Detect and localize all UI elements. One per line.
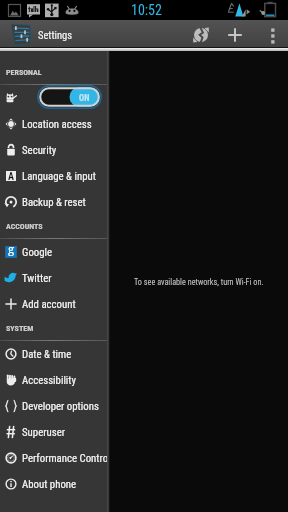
- staticText: Twitter: [22, 272, 52, 285]
- button[interactable]: More options: [259, 21, 287, 49]
- button[interactable]: Date & time: [0, 341, 107, 367]
- button[interactable]: Add: [221, 21, 249, 49]
- staticText: Date & time: [22, 348, 72, 361]
- button[interactable]: Developer options: [0, 393, 107, 419]
- staticText: Language & input: [22, 170, 96, 183]
- staticText: ACCOUNTS: [6, 222, 43, 231]
- button[interactable]: Performance Control: [0, 445, 107, 471]
- button[interactable]: Twitter: [0, 265, 107, 291]
- staticText: Accessibility: [22, 374, 77, 387]
- button[interactable]: Location access: [0, 111, 107, 137]
- button[interactable]: Settings: [0, 21, 73, 49]
- button[interactable]: Backup & reset: [0, 189, 107, 215]
- staticText: 10:52: [131, 2, 162, 18]
- staticText: Google: [22, 246, 53, 259]
- staticText: SYSTEM: [6, 324, 34, 333]
- staticText: Location access: [22, 118, 92, 131]
- button[interactable]: Security: [0, 137, 107, 163]
- staticText: About phone: [22, 478, 77, 491]
- button[interactable]: A: [0, 163, 107, 189]
- button[interactable]: Accessibility: [0, 367, 107, 393]
- staticText: Performance Control: [22, 452, 107, 465]
- button[interactable]: ON: [0, 85, 107, 111]
- staticText: g: [8, 241, 15, 257]
- staticText: PERSONAL: [6, 68, 42, 77]
- staticText: Backup & reset: [22, 196, 86, 209]
- staticText: Superuser: [22, 426, 65, 439]
- button[interactable]: Refresh: [187, 21, 215, 49]
- button[interactable]: g: [0, 239, 107, 265]
- button[interactable]: Add account: [0, 291, 107, 317]
- staticText: Developer options: [22, 400, 99, 413]
- staticText: ON: [79, 93, 90, 103]
- staticText: A: [8, 171, 14, 181]
- staticText: Security: [22, 144, 57, 157]
- button[interactable]: About phone: [0, 471, 107, 497]
- staticText: Settings: [38, 29, 73, 41]
- staticText: To see available networks, turn Wi-Fi on…: [134, 277, 264, 287]
- button[interactable]: Superuser: [0, 419, 107, 445]
- staticText: Add account: [22, 298, 76, 311]
